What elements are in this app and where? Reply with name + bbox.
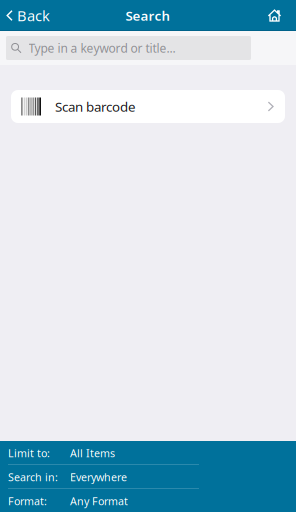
staticText: Limit to: xyxy=(8,446,50,460)
staticText: Type in a keyword or title... xyxy=(28,40,175,56)
staticText: Back xyxy=(17,6,50,25)
button[interactable]: Scan barcode xyxy=(11,90,285,123)
button[interactable]: Format: xyxy=(0,489,296,512)
staticText: Everywhere xyxy=(70,470,127,484)
button[interactable]: Type in a keyword or title... xyxy=(6,36,251,60)
button[interactable]: Limit to: xyxy=(0,441,296,465)
staticText: All Items xyxy=(70,446,115,460)
button[interactable]: Back xyxy=(0,0,58,30)
staticText: Any Format xyxy=(70,494,128,508)
staticText: Search in: xyxy=(8,470,58,484)
staticText: Search xyxy=(125,7,170,24)
button[interactable]: Home xyxy=(258,0,296,30)
staticText: Scan barcode xyxy=(55,98,136,115)
staticText: Format: xyxy=(8,494,47,508)
button[interactable]: Search in: xyxy=(0,465,296,489)
